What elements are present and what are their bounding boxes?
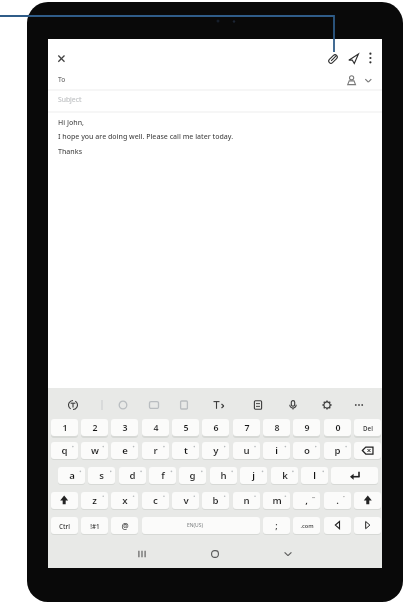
- button[interactable]: j: [240, 467, 267, 484]
- staticText: 2: [92, 422, 98, 434]
- button[interactable]: 5: [172, 419, 199, 436]
- staticText: z: [92, 494, 97, 507]
- staticText: EN(US): [187, 522, 203, 529]
- button[interactable]: 8: [263, 419, 290, 436]
- button[interactable]: [142, 517, 260, 534]
- staticText: !#1: [90, 522, 100, 530]
- staticText: l: [313, 469, 316, 482]
- button[interactable]: c: [142, 492, 169, 509]
- button[interactable]: [208, 396, 226, 414]
- staticText: h: [220, 469, 227, 482]
- button[interactable]: t: [172, 442, 199, 459]
- button[interactable]: [354, 517, 381, 534]
- staticText: ,: [305, 494, 308, 507]
- button[interactable]: s: [88, 467, 115, 484]
- staticText: Thanks: [58, 147, 83, 157]
- staticText: ;: [275, 520, 278, 532]
- button[interactable]: p: [324, 442, 351, 459]
- button[interactable]: [249, 396, 267, 414]
- button[interactable]: [331, 467, 378, 484]
- staticText: 0: [335, 422, 341, 434]
- button[interactable]: h: [210, 467, 237, 484]
- button[interactable]: e: [111, 442, 138, 459]
- button[interactable]: .: [324, 492, 351, 509]
- button[interactable]: Del: [354, 419, 381, 436]
- button[interactable]: b: [202, 492, 229, 509]
- staticText: v: [183, 494, 189, 507]
- staticText: @: [121, 520, 129, 531]
- button[interactable]: l: [301, 467, 328, 484]
- button[interactable]: [145, 396, 163, 414]
- staticText: 5: [183, 422, 189, 434]
- staticText: f: [161, 469, 165, 482]
- staticText: m: [272, 494, 282, 507]
- button[interactable]: !#1: [81, 517, 108, 534]
- staticText: .: [336, 494, 339, 507]
- button[interactable]: 6: [202, 419, 229, 436]
- button[interactable]: [64, 396, 82, 414]
- button[interactable]: r: [142, 442, 169, 459]
- button[interactable]: @: [111, 517, 138, 534]
- button[interactable]: [284, 396, 302, 414]
- button[interactable]: n: [233, 492, 260, 509]
- button[interactable]: o: [293, 442, 320, 459]
- button[interactable]: [350, 396, 368, 414]
- staticText: u: [243, 444, 250, 457]
- button[interactable]: y: [202, 442, 229, 459]
- staticText: 3: [122, 422, 128, 434]
- staticText: 6: [213, 422, 219, 434]
- staticText: 9: [304, 422, 310, 434]
- button[interactable]: g: [179, 467, 206, 484]
- button[interactable]: [48, 67, 208, 85]
- button[interactable]: [360, 72, 376, 89]
- button[interactable]: 3: [111, 419, 138, 436]
- button[interactable]: [274, 544, 302, 564]
- button[interactable]: u: [233, 442, 260, 459]
- button[interactable]: Ctrl: [51, 517, 78, 534]
- button[interactable]: 7: [233, 419, 260, 436]
- button[interactable]: [343, 72, 360, 89]
- staticText: b: [212, 494, 219, 507]
- button[interactable]: i: [263, 442, 290, 459]
- button[interactable]: ;: [263, 517, 290, 534]
- button[interactable]: [201, 544, 229, 564]
- button[interactable]: [114, 396, 132, 414]
- staticText: x: [122, 494, 128, 507]
- button[interactable]: [51, 492, 78, 509]
- button[interactable]: [128, 544, 156, 564]
- button[interactable]: q: [51, 442, 78, 459]
- staticText: Del: [363, 424, 373, 432]
- staticText: q: [61, 444, 68, 457]
- button[interactable]: [324, 50, 341, 67]
- staticText: j: [252, 469, 255, 482]
- button[interactable]: w: [81, 442, 108, 459]
- staticText: To: [58, 75, 66, 84]
- button[interactable]: [318, 396, 336, 414]
- staticText: 4: [153, 422, 159, 434]
- button[interactable]: [362, 50, 378, 67]
- button[interactable]: [354, 492, 381, 509]
- button[interactable]: d: [119, 467, 146, 484]
- staticText: Ctrl: [59, 522, 70, 530]
- button[interactable]: [175, 396, 193, 414]
- button[interactable]: 2: [81, 419, 108, 436]
- button[interactable]: a: [58, 467, 85, 484]
- button[interactable]: m: [263, 492, 290, 509]
- staticText: 7: [244, 422, 250, 434]
- button[interactable]: ,: [293, 492, 320, 509]
- button[interactable]: [53, 50, 70, 67]
- button[interactable]: z: [81, 492, 108, 509]
- button[interactable]: 0: [324, 419, 351, 436]
- button[interactable]: v: [172, 492, 199, 509]
- button[interactable]: [354, 442, 381, 459]
- button[interactable]: 4: [142, 419, 169, 436]
- button[interactable]: [324, 517, 351, 534]
- staticText: Subject: [58, 95, 82, 104]
- button[interactable]: 1: [51, 419, 78, 436]
- button[interactable]: .com: [293, 517, 320, 534]
- button[interactable]: k: [271, 467, 298, 484]
- button[interactable]: 9: [293, 419, 320, 436]
- button[interactable]: f: [149, 467, 176, 484]
- button[interactable]: [345, 50, 362, 67]
- button[interactable]: x: [111, 492, 138, 509]
